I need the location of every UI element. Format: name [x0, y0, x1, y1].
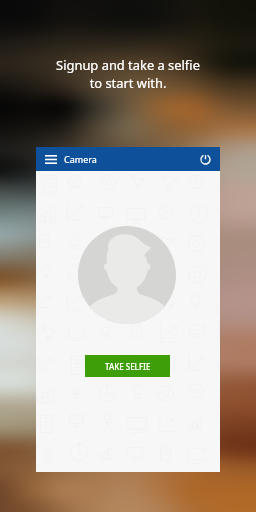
staticText: Signup and take a selfie to start with.: [56, 56, 200, 92]
staticText: Camera: [64, 153, 97, 165]
button[interactable]: TAKE SELFIE: [85, 355, 170, 377]
staticText: TAKE SELFIE: [105, 361, 151, 372]
button[interactable]: Power: [198, 152, 212, 166]
button[interactable]: Menu: [44, 152, 58, 166]
